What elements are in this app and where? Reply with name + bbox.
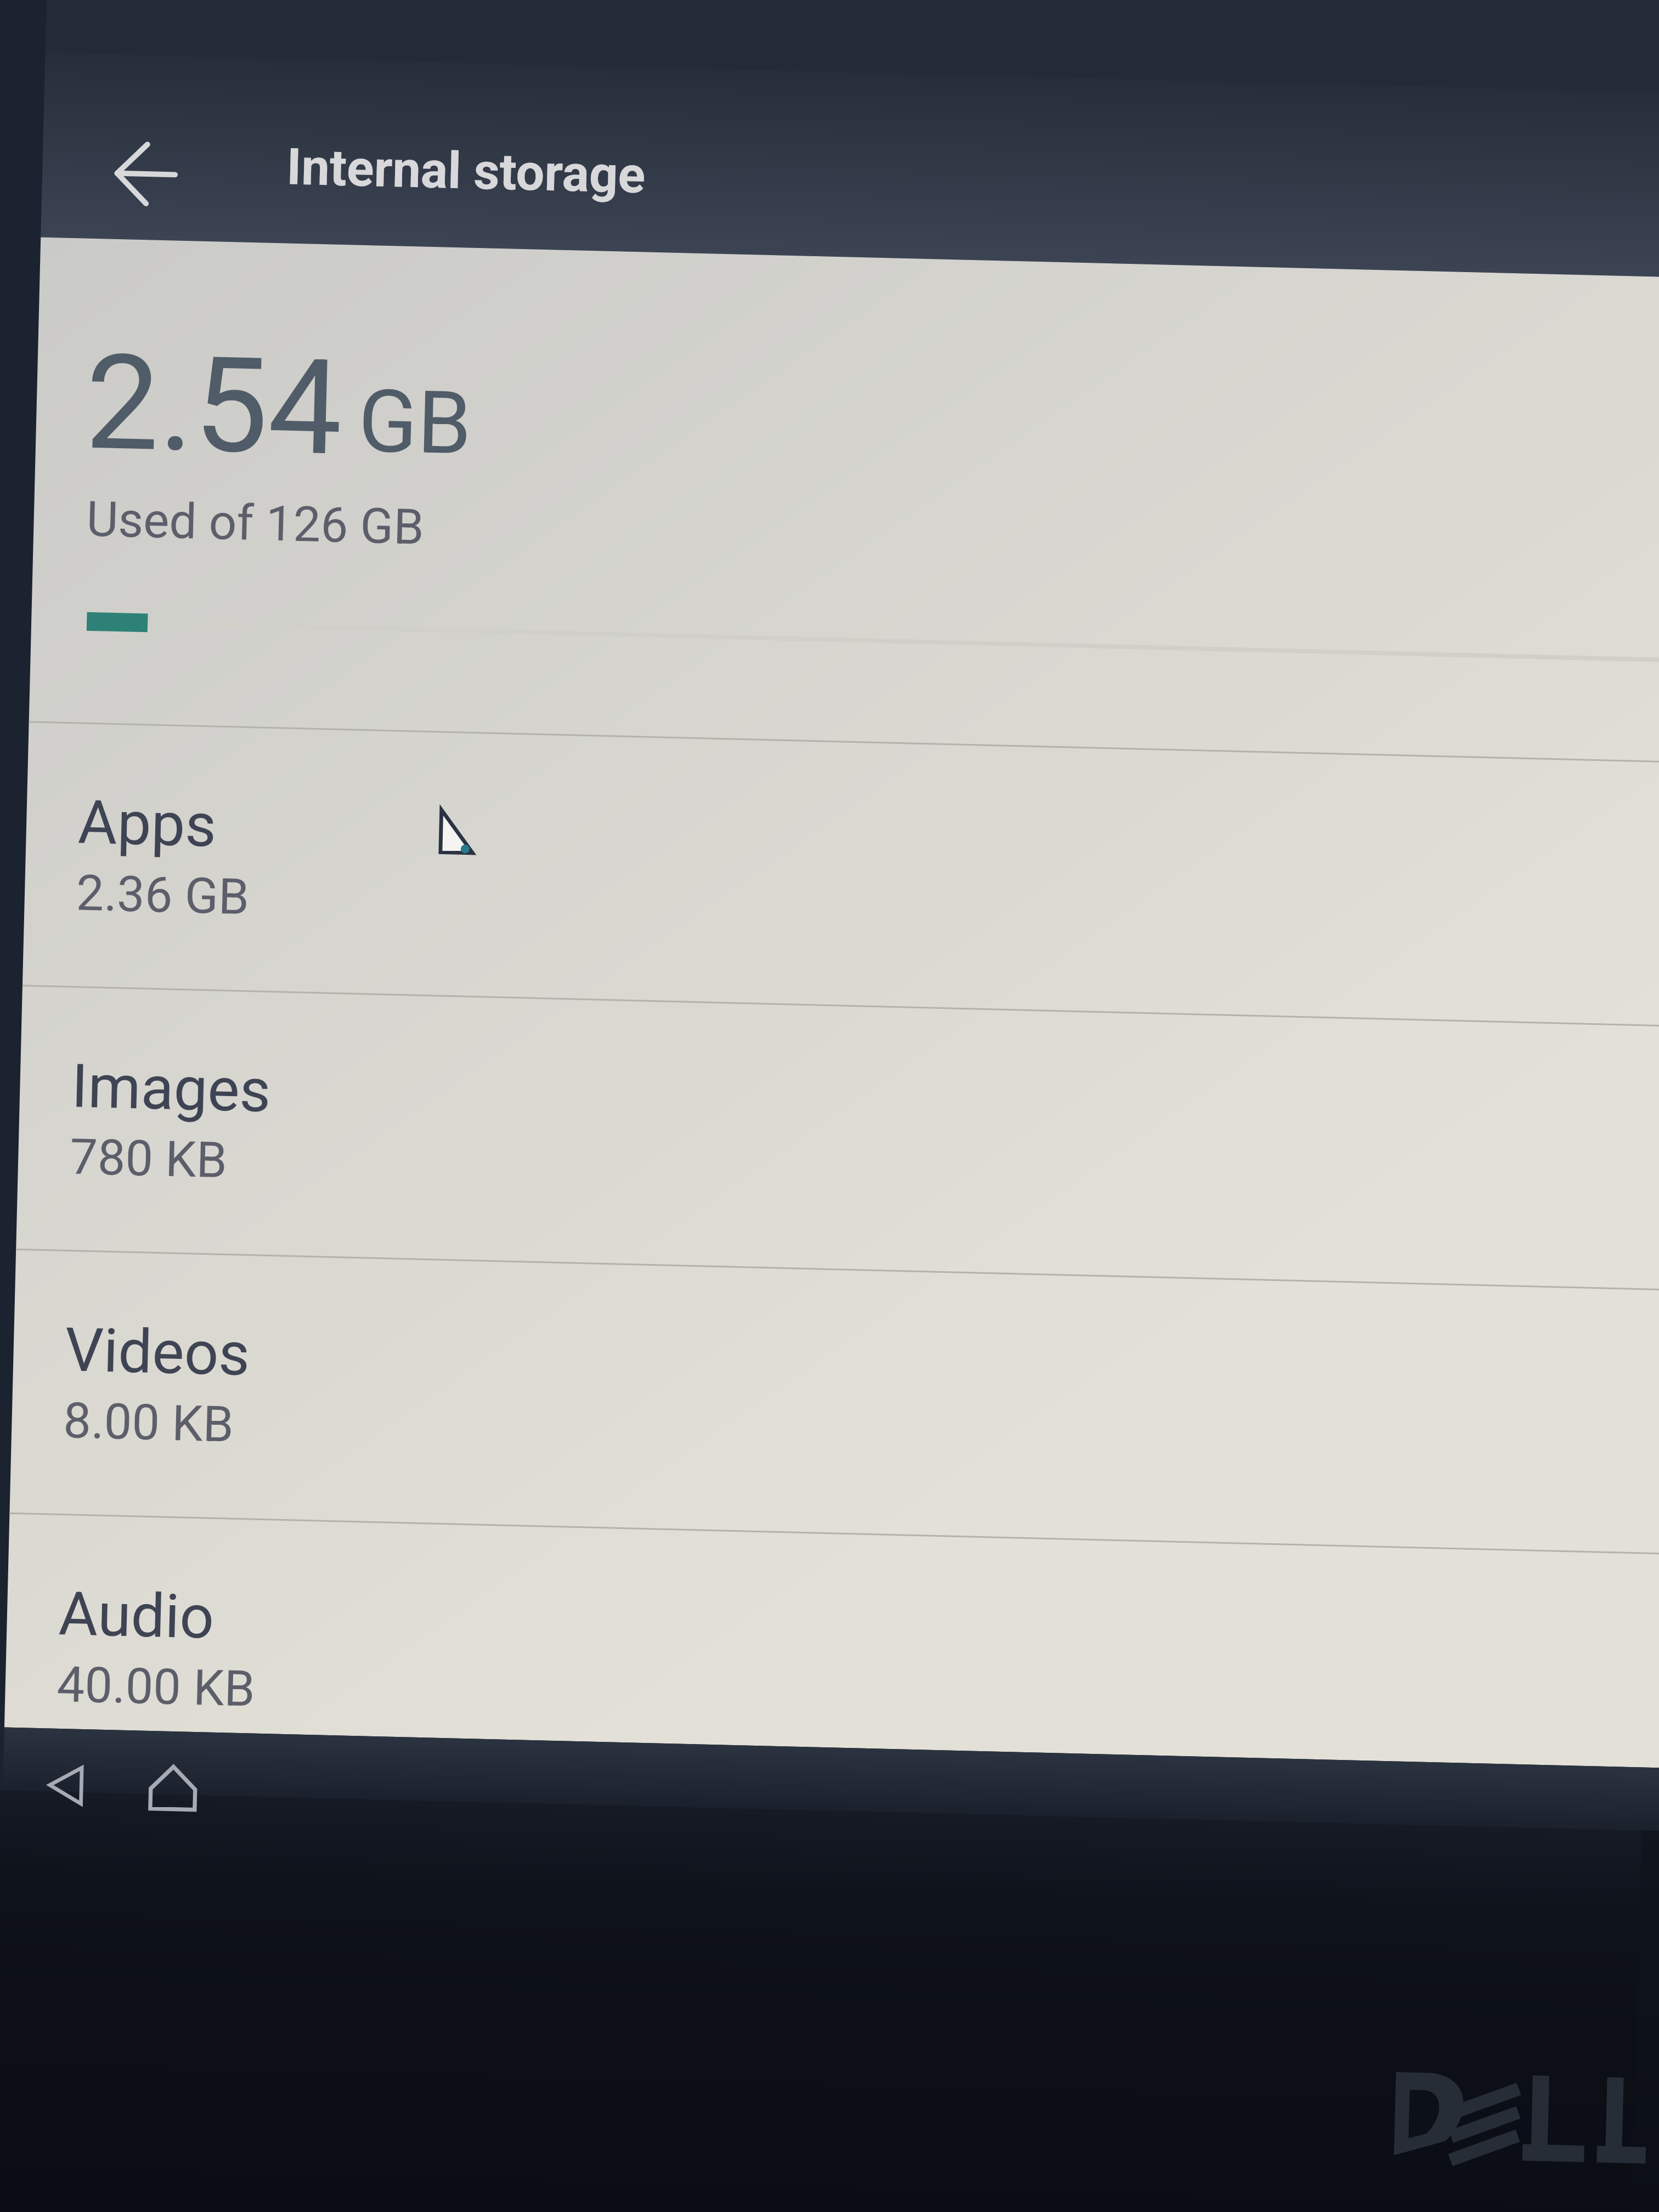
staticText: Used of 126 GB <box>86 490 425 556</box>
button[interactable]: Apps <box>22 721 1659 1026</box>
staticText: Apps <box>77 787 218 861</box>
button[interactable]: Navigate up <box>92 121 199 227</box>
button[interactable]: Images <box>16 985 1659 1289</box>
staticText: GB <box>357 370 473 474</box>
button[interactable]: Home <box>137 1755 209 1820</box>
staticText: Internal storage <box>286 137 646 205</box>
button[interactable]: Videos <box>10 1249 1659 1553</box>
staticText: Images <box>71 1051 272 1126</box>
button[interactable]: Back <box>30 1753 102 1817</box>
staticText: 2.54 <box>84 325 344 485</box>
staticText: 2.36 GB <box>76 864 250 926</box>
button[interactable]: Audio <box>3 1512 1659 1817</box>
staticText: Audio <box>58 1578 215 1653</box>
staticText: Videos <box>64 1315 251 1390</box>
staticText: 780 KB <box>69 1128 228 1189</box>
staticText: 40.00 KB <box>56 1656 256 1718</box>
staticText: 8.00 KB <box>63 1392 235 1454</box>
